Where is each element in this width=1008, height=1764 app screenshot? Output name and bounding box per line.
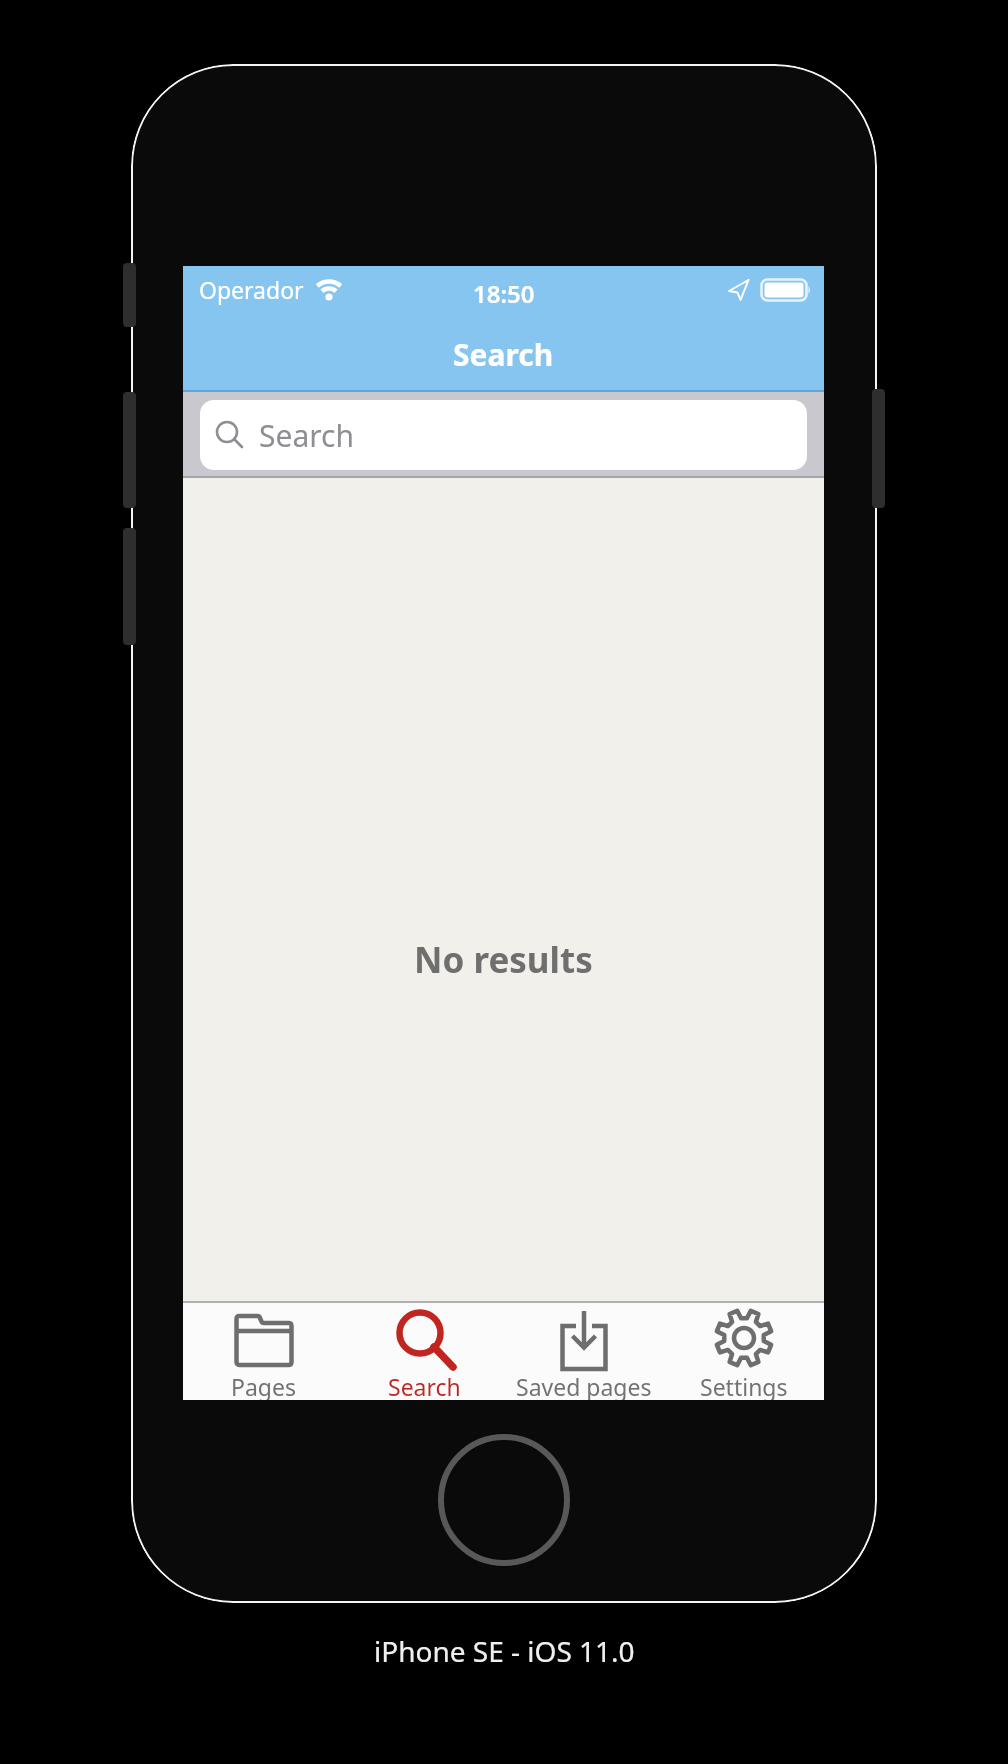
staticText: Pages <box>231 1371 296 1400</box>
staticText: Saved pages <box>516 1371 652 1400</box>
staticText: Search <box>388 1371 461 1400</box>
staticText: Search <box>453 334 554 375</box>
staticText: 18:50 <box>473 277 535 310</box>
button[interactable]: Search <box>200 400 807 470</box>
staticText: iPhone SE - iOS 11.0 <box>374 1632 635 1670</box>
staticText: Search <box>259 415 354 456</box>
button[interactable]: Settings <box>664 1303 824 1400</box>
staticText: Settings <box>700 1371 788 1400</box>
staticText: No results <box>414 936 593 984</box>
staticText: Operador <box>199 274 304 305</box>
button[interactable]: Saved pages <box>504 1303 664 1400</box>
button[interactable]: Search <box>344 1303 504 1400</box>
button[interactable]: Pages <box>183 1303 344 1400</box>
